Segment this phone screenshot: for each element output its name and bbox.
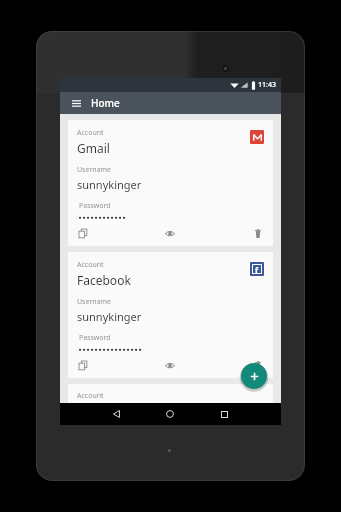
button[interactable]: Back <box>107 405 125 423</box>
staticText: sunnykinger <box>77 309 142 324</box>
staticText: f <box>255 265 259 273</box>
button[interactable]: Copy password <box>75 357 91 373</box>
button[interactable]: Show password <box>162 225 178 241</box>
staticText: Password <box>79 201 111 211</box>
staticText: Account <box>77 128 104 138</box>
button[interactable]: Show password <box>162 357 178 373</box>
button[interactable]: Account <box>68 252 273 378</box>
staticText: Username <box>77 297 112 307</box>
staticText: sunnykinger <box>77 177 142 192</box>
button[interactable]: Delete account <box>250 357 266 373</box>
button[interactable]: Account <box>68 384 273 403</box>
button[interactable]: Home <box>161 405 179 423</box>
button[interactable]: Add account <box>241 363 267 389</box>
button[interactable]: Delete account <box>250 225 266 241</box>
button[interactable]: Recent apps <box>215 405 233 423</box>
staticText: 11:43 <box>258 80 276 90</box>
staticText: Account <box>77 391 104 401</box>
staticText: Password <box>79 333 111 343</box>
button[interactable]: Account <box>68 120 273 246</box>
staticText: Facebook <box>77 272 131 288</box>
staticText: Username <box>77 165 112 175</box>
staticText: Account <box>77 260 104 270</box>
staticText: Home <box>91 96 120 110</box>
staticText: Gmail <box>77 140 110 156</box>
button[interactable]: Open navigation menu <box>69 96 83 110</box>
button[interactable]: Copy password <box>75 225 91 241</box>
